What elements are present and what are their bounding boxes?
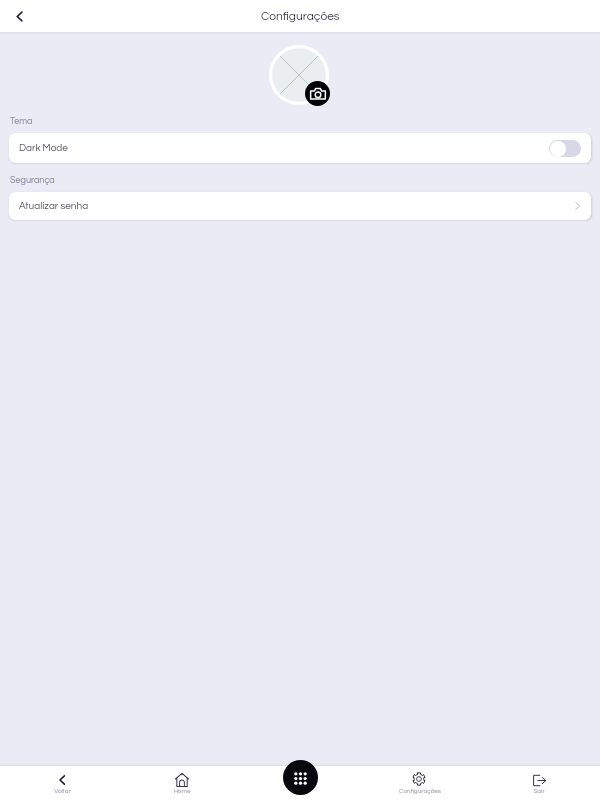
button[interactable]: Voltar — [0, 0, 38, 32]
button[interactable]: Dark Mode — [9, 133, 591, 163]
staticText: Sair — [533, 788, 545, 795]
staticText: Tema — [10, 117, 33, 126]
staticText: Voltar — [54, 788, 71, 795]
button[interactable]: Menu — [283, 760, 318, 795]
staticText: Atualizar senha — [19, 201, 89, 211]
button[interactable]: Configurações — [360, 766, 479, 800]
button[interactable]: Alterar foto — [305, 81, 330, 106]
staticText: Configurações — [261, 10, 340, 22]
staticText: Configurações — [399, 788, 441, 795]
button[interactable]: Dark Mode toggle — [549, 140, 581, 157]
staticText: Dark Mode — [19, 143, 68, 153]
button[interactable]: Sair — [479, 766, 598, 800]
button[interactable]: Voltar — [2, 766, 122, 800]
staticText: Home — [173, 788, 191, 795]
staticText: Segurança — [10, 176, 55, 185]
button[interactable]: Home — [122, 766, 241, 800]
button[interactable]: Atualizar senha — [9, 192, 591, 220]
